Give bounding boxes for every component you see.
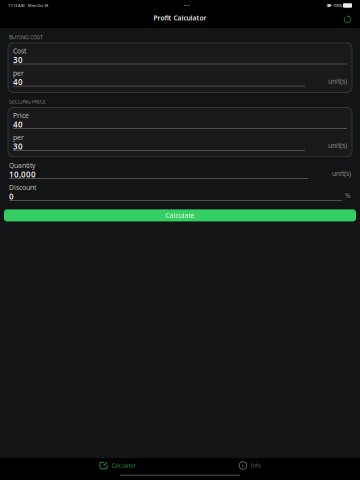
staticText: Cost [13,47,26,55]
staticText: BUYING COST [9,34,43,41]
staticText: Mon Oct 18 [25,3,48,8]
staticText: Calculate [165,211,194,220]
staticText: Price [13,111,29,120]
staticText: 10,000 [9,169,36,180]
button[interactable]: Calculate [4,209,356,221]
staticText: per [13,133,24,142]
staticText: Quantity [9,161,35,170]
staticText: Calculator [111,462,135,469]
staticText: ••• [184,3,190,8]
button[interactable]: Reset [340,12,355,27]
staticText: unit(s) [332,169,351,178]
staticText: unit(s) [328,77,347,85]
button[interactable]: Calculator [95,458,139,473]
staticText: 0 [9,191,14,202]
staticText: 100% [332,3,343,8]
staticText: SELLING PRICE [9,98,46,105]
staticText: % [345,191,351,200]
button[interactable]: Info [235,458,265,473]
staticText: 40 [13,77,23,87]
staticText: 11:13 AM [8,3,25,8]
staticText: unit(s) [328,141,347,150]
staticText: Profit Calculator [153,14,206,22]
staticText: per [13,69,24,78]
staticText: 30 [13,141,23,152]
staticText: Discount [9,183,36,192]
staticText: 40 [13,119,23,130]
staticText: Info [251,462,261,469]
staticText: 30 [13,55,23,65]
